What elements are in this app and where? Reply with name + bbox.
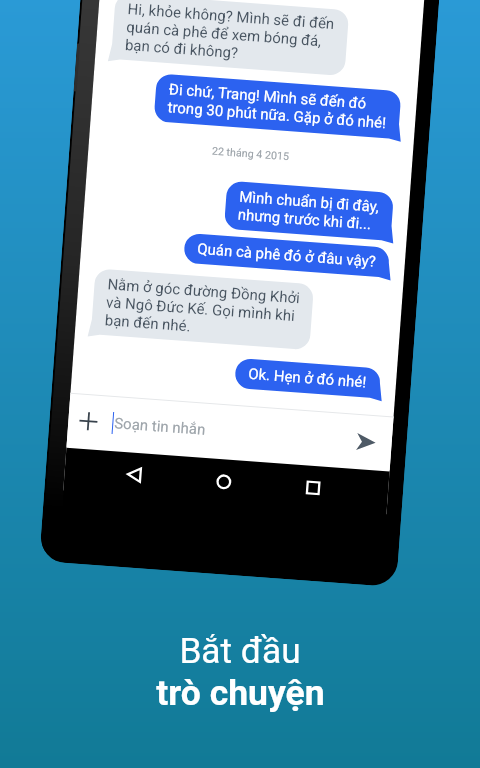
button[interactable]: Ok. Hẹn ở đó nhé! [234,358,381,398]
staticText: trò chuyện [156,672,325,714]
staticText: Soạn tin nhắn [114,414,207,439]
staticText: Hi, khỏe không? Mình sẽ đi đến quán cà p… [124,0,336,69]
button[interactable]: Recent apps [296,471,330,505]
button[interactable]: Hi, khỏe không? Mình sẽ đi đến quán cà p… [111,0,349,76]
button[interactable]: Quán cà phê đó ở đâu vậy? [183,233,390,278]
button[interactable]: Nằm ở góc đường Đồng Khởi và Ngô Đức Kế.… [91,268,314,350]
button[interactable]: Back [116,458,151,492]
button[interactable]: Mình chuẩn bị đi đây, nhưng trước khi đi… [224,181,394,241]
button[interactable]: Send [349,414,383,470]
staticText: Quán cà phê đó ở đâu vậy? [197,240,376,271]
staticText: Đi chứ, Trang! Mình sẽ đến đó trong 30 p… [167,80,388,132]
staticText: Mình chuẩn bị đi đây, nhưng trước khi đi… [237,188,381,234]
staticText: Ok. Hẹn ở đó nhé! [248,365,368,391]
button[interactable]: Add attachment [71,393,105,449]
button[interactable]: Home [206,464,241,498]
staticText: Bắt đầu [179,630,301,671]
staticText: 22 tháng 4 2015 [88,135,412,172]
button[interactable]: Đi chứ, Trang! Mình sẽ đến đó trong 30 p… [154,73,401,139]
staticText: Nằm ở góc đường Đồng Khởi và Ngô Đức Kế.… [104,275,301,343]
